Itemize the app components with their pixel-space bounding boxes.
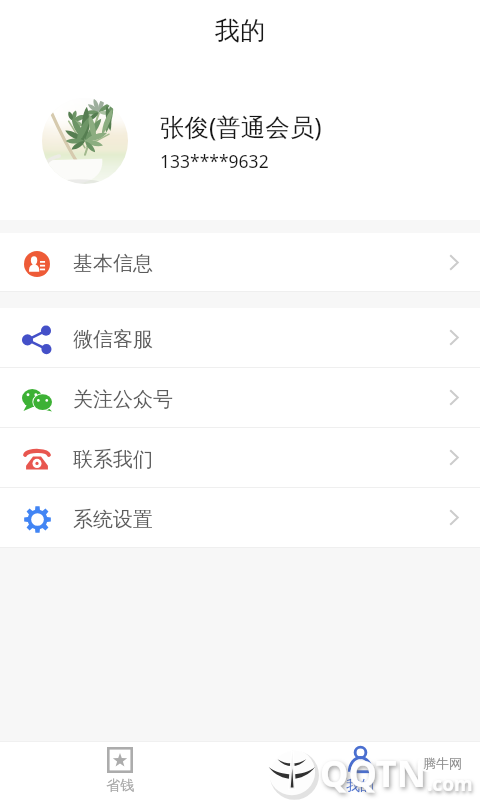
- button[interactable]: 基本信息: [0, 233, 480, 292]
- staticText: 腾牛网: [423, 755, 462, 771]
- button[interactable]: 系统设置: [0, 488, 480, 548]
- button[interactable]: 联系我们: [0, 428, 480, 488]
- staticText: 系统设置: [73, 507, 153, 532]
- staticText: 张俊(普通会员): [160, 110, 322, 143]
- staticText: 我的: [346, 777, 374, 795]
- staticText: 联系我们: [73, 447, 153, 472]
- button[interactable]: 省钱: [0, 741, 240, 800]
- staticText: 微信客服: [73, 327, 153, 352]
- other: 我的: [348, 747, 373, 773]
- button[interactable]: 关注公众号: [0, 368, 480, 428]
- staticText: 关注公众号: [73, 387, 173, 412]
- staticText: 基本信息: [73, 251, 153, 276]
- staticText: QQTN: [320, 749, 426, 798]
- button[interactable]: 微信客服: [0, 308, 480, 368]
- staticText: 省钱: [106, 777, 134, 795]
- staticText: 133****9632: [160, 149, 269, 173]
- staticText: .com: [427, 771, 473, 797]
- staticText: 我的: [215, 15, 265, 46]
- button[interactable]: 我的: [240, 741, 480, 800]
